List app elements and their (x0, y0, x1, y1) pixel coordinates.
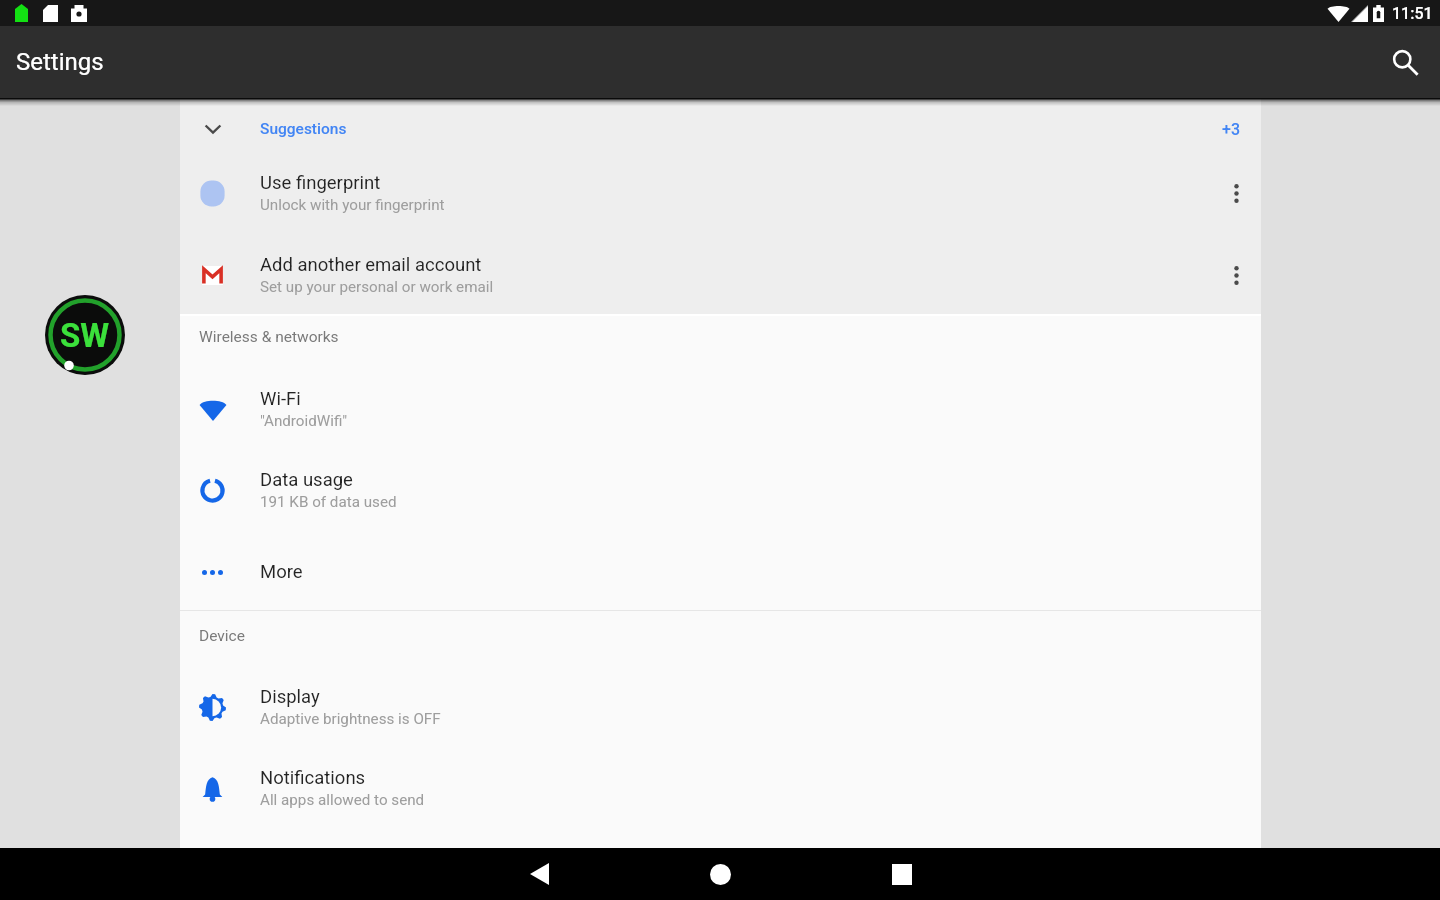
staticText: Add another email account (260, 254, 482, 276)
button[interactable]: Recents (811, 848, 992, 900)
button[interactable]: Back (449, 848, 630, 900)
staticText: Unlock with your fingerprint (260, 196, 445, 214)
button[interactable]: Home (630, 848, 811, 900)
staticText: More (260, 561, 303, 583)
staticText: All apps allowed to send (260, 791, 425, 809)
staticText: Wireless & networks (199, 328, 339, 346)
button[interactable]: Notifications (180, 748, 1261, 828)
staticText: "AndroidWifi" (260, 412, 348, 430)
button[interactable]: Add another email account (180, 235, 1261, 315)
staticText: Display (260, 686, 320, 708)
staticText: Use fingerprint (260, 172, 381, 194)
button[interactable]: More options (1211, 235, 1261, 315)
button[interactable]: Search (1381, 38, 1429, 86)
staticText: Adaptive brightness is OFF (260, 710, 441, 728)
staticText: +3 (1222, 120, 1240, 139)
button[interactable]: Wi-Fi (180, 369, 1261, 449)
button[interactable]: Display (180, 667, 1261, 747)
button[interactable]: Suggestions (180, 98, 1261, 160)
staticText: Wi-Fi (260, 388, 301, 410)
staticText: Notifications (260, 767, 366, 789)
staticText: Set up your personal or work email (260, 278, 494, 296)
staticText: Suggestions (260, 120, 347, 138)
button[interactable]: Data usage (180, 450, 1261, 530)
staticText: 11:51 (1392, 4, 1433, 23)
staticText: Device (199, 627, 245, 645)
staticText: Data usage (260, 469, 353, 491)
button[interactable]: Use fingerprint (180, 153, 1261, 233)
staticText: SW (60, 316, 110, 355)
button[interactable]: More options (1211, 153, 1261, 233)
staticText: 191 KB of data used (260, 493, 397, 511)
staticText: Settings (16, 48, 104, 76)
button[interactable]: SW overlay (40, 290, 130, 380)
button[interactable]: More (180, 532, 1261, 612)
